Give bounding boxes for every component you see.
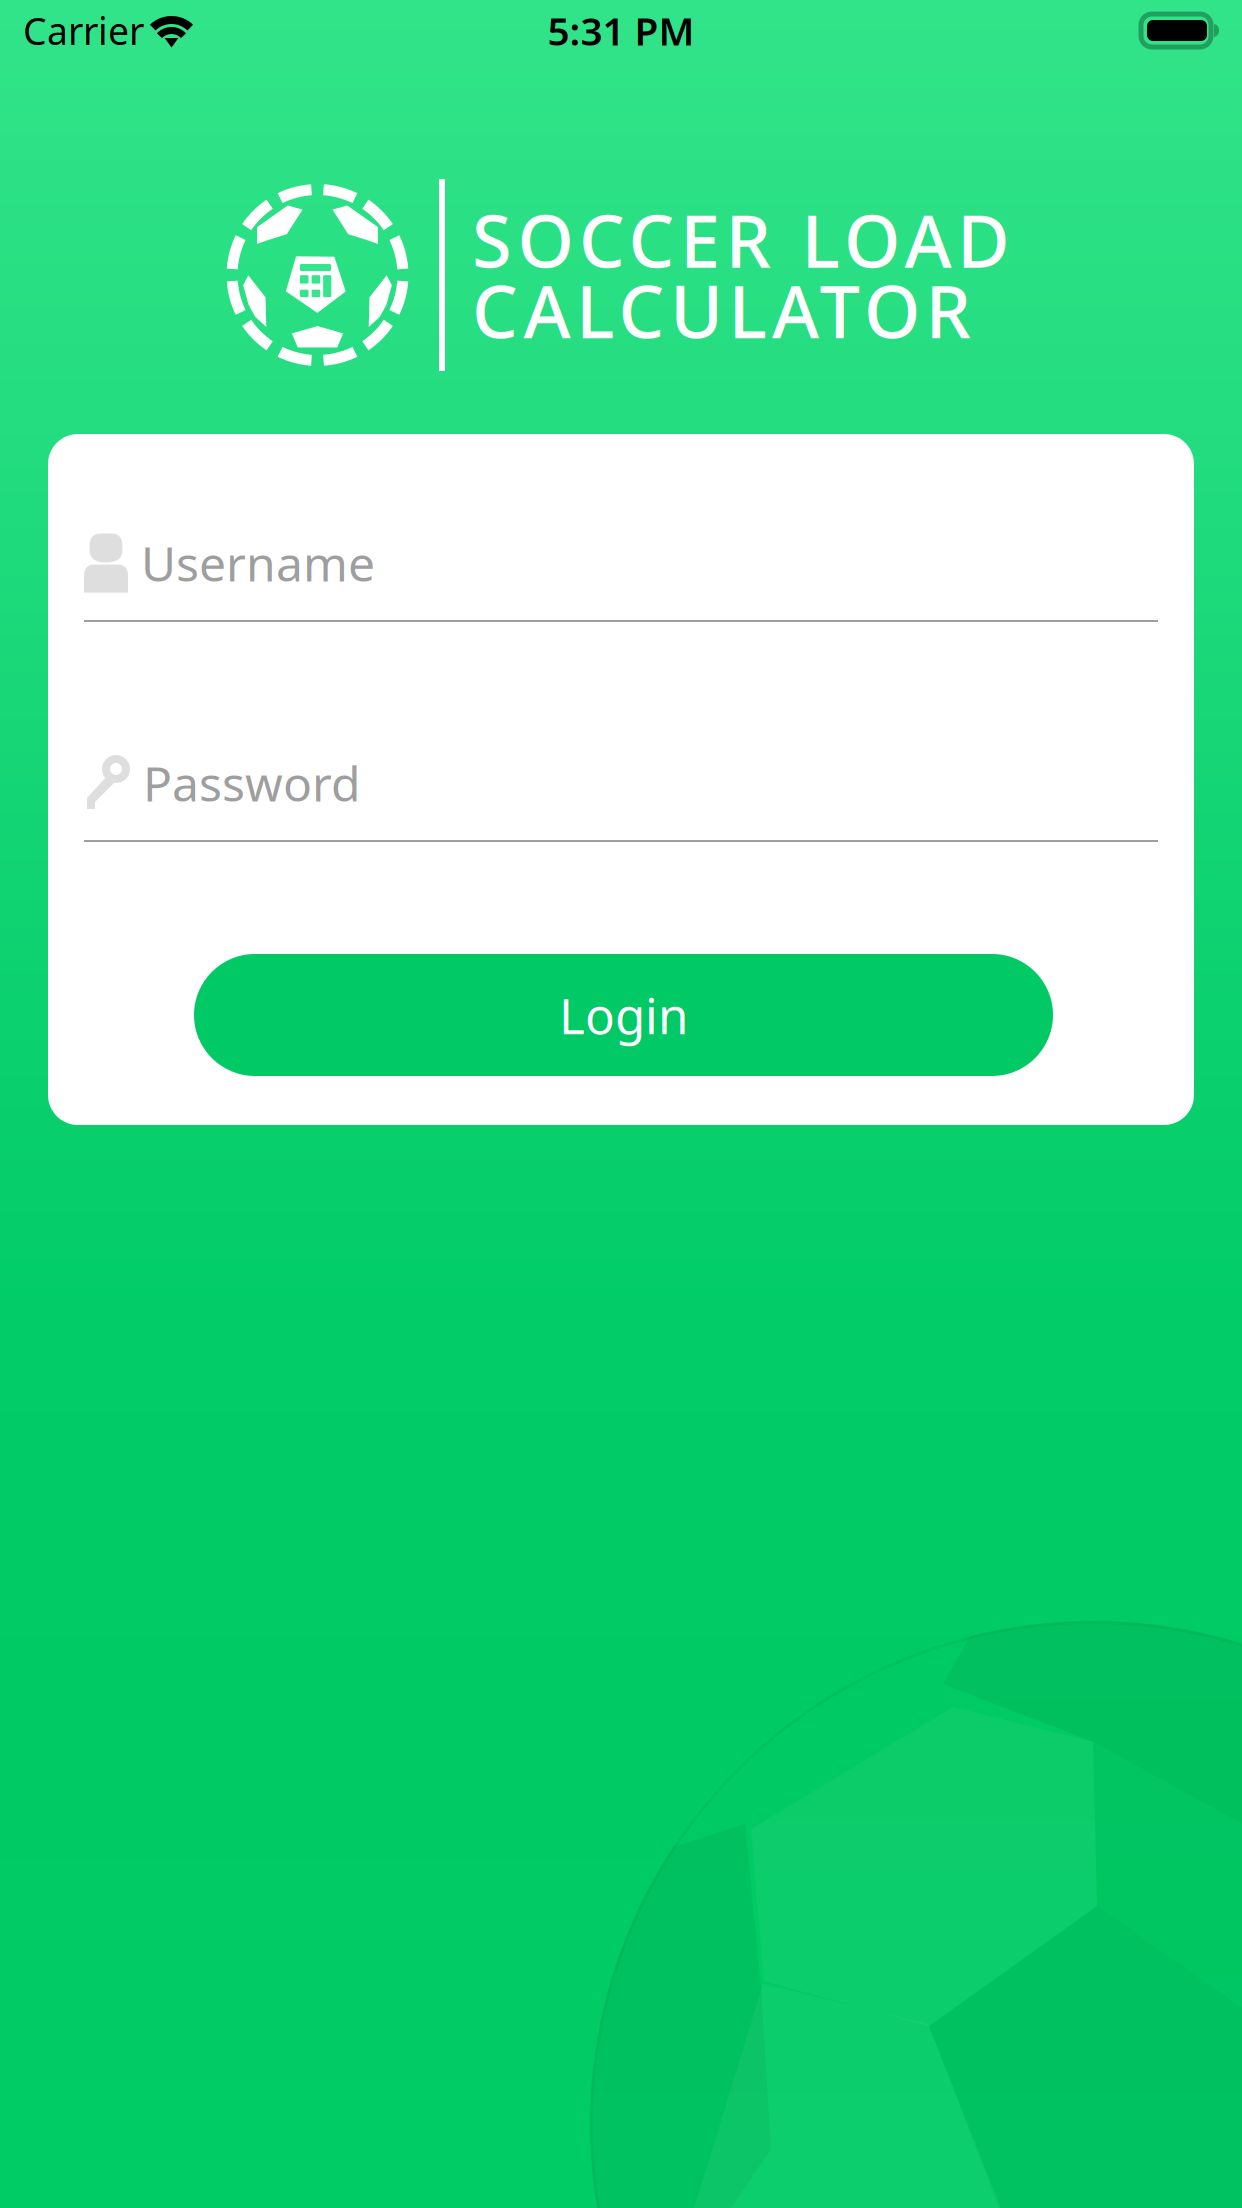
- staticText: Carrier: [23, 6, 144, 55]
- staticText: 5:31 PM: [547, 5, 694, 56]
- staticText: SOCCER LOAD: [472, 192, 1010, 287]
- staticText: CALCULATOR: [472, 262, 971, 358]
- staticText: Password: [143, 751, 361, 815]
- staticText: Username: [141, 531, 375, 595]
- button[interactable]: Login: [194, 954, 1053, 1076]
- staticText: Login: [559, 982, 688, 1048]
